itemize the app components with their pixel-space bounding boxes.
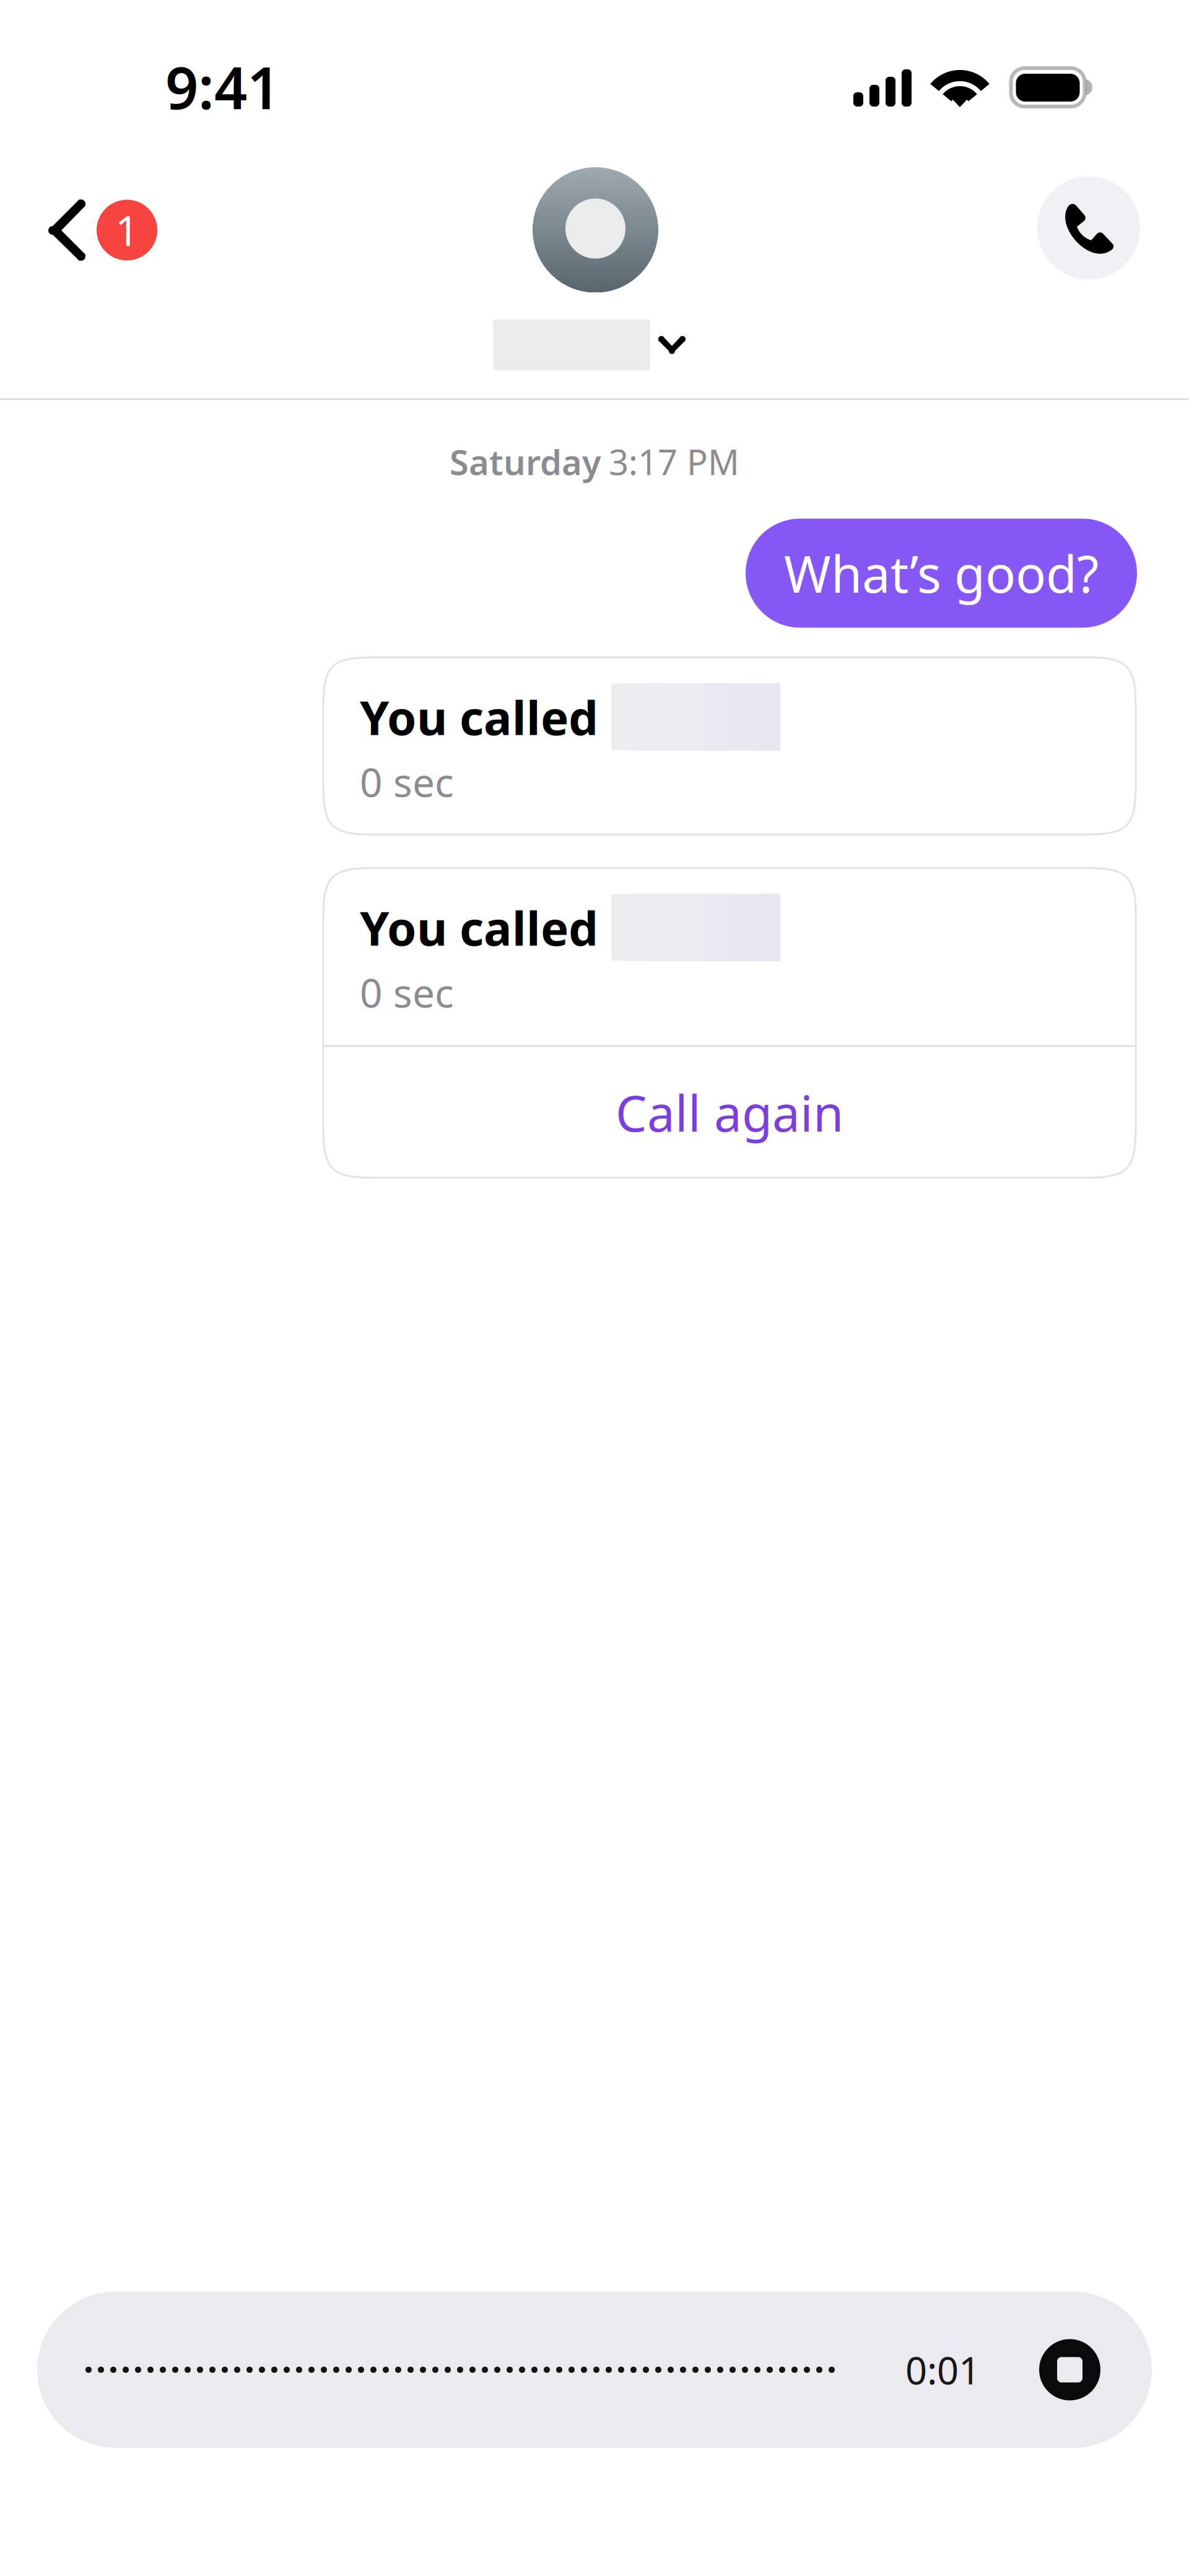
staticText: 9:41 <box>165 48 280 125</box>
staticText: 0 sec <box>360 966 454 1019</box>
staticText: Saturday <box>450 439 601 485</box>
staticText: 3:17 PM <box>609 439 739 485</box>
staticText: What’s good? <box>784 540 1099 607</box>
button[interactable]: Call <box>1022 162 1155 294</box>
button[interactable]: Call again <box>323 1047 1136 1178</box>
button[interactable]: Conversation details <box>492 160 699 378</box>
staticText: You called <box>360 686 598 748</box>
button[interactable]: Back <box>19 183 187 277</box>
staticText: 0 sec <box>360 755 454 808</box>
button[interactable]: Stop recording <box>986 2339 1100 2400</box>
staticText: 0:01 <box>905 2345 980 2395</box>
staticText: You called <box>360 896 598 959</box>
staticText: 1 <box>115 203 139 257</box>
staticText: Call again <box>616 1079 843 1145</box>
